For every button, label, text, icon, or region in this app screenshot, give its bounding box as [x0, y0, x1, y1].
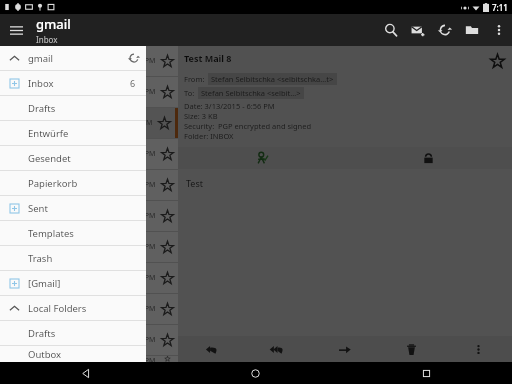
staticText: Inbox [28, 77, 130, 90]
staticText: Stefan Selbitschka <selbit…> [201, 88, 301, 98]
button[interactable]: Compose [404, 14, 431, 46]
button[interactable]: [Gmail] [0, 271, 146, 295]
button[interactable]: Stefan Selbitschka [0, 108, 178, 138]
button[interactable]: Back [0, 362, 170, 384]
staticText: Papierkorb [28, 177, 138, 190]
button[interactable]: Gesendet [0, 146, 146, 170]
staticText: Test Mail 4 [5, 279, 40, 289]
staticText: Stefan Selbitschka [5, 206, 75, 217]
button[interactable]: Outbox [0, 346, 146, 362]
button[interactable]: Stefan Selbitschka [0, 170, 178, 200]
staticText: Stefan Selbitschka [5, 82, 75, 93]
button[interactable]: Drafts [0, 321, 146, 345]
button[interactable]: Home [170, 362, 341, 384]
staticText: Gesendet [28, 152, 138, 165]
button[interactable]: Stefan Selbitschka [0, 46, 178, 76]
button[interactable]: Close navigation drawer [0, 46, 512, 362]
button[interactable]: Sent [0, 196, 146, 220]
staticText: Stefan Selbitschka [5, 268, 75, 279]
button[interactable]: gmail [0, 46, 146, 70]
button[interactable]: Stefan Selbitschka [0, 325, 178, 355]
staticText: Test [186, 177, 204, 189]
button[interactable]: Star message [488, 52, 506, 70]
button[interactable]: More options [445, 336, 512, 362]
staticText: Test Mail 10 [5, 93, 44, 103]
button[interactable]: Open navigation drawer [0, 14, 32, 46]
staticText: Sent [28, 202, 138, 215]
staticText: Test Mail 5 [5, 248, 40, 258]
button[interactable]: Reply all [244, 336, 311, 362]
staticText: 6 [130, 77, 136, 89]
button[interactable]: Stefan Selbitschka <selbitschka…t> [211, 74, 334, 84]
staticText: Date: 3/13/2015 - 6:56 PM [184, 101, 275, 111]
staticText: Inbox [36, 34, 58, 45]
staticText: Test Mail 7 [5, 186, 40, 196]
button[interactable]: Stefan Selbitschka <selbit…> [201, 88, 301, 98]
staticText: Security: PGP encrypted and signed [184, 121, 312, 131]
button[interactable]: Stefan Selbitschka [0, 77, 178, 107]
staticText: 6:53 PM [129, 242, 156, 252]
staticText: Folder: INBOX [184, 131, 234, 141]
button[interactable]: Search [377, 14, 404, 46]
staticText: 6:57 PM [129, 56, 156, 66]
button[interactable]: Entwürfe [0, 121, 146, 145]
button[interactable]: Recents [341, 362, 512, 384]
staticText: Stefan Selbitschka [5, 330, 75, 341]
staticText: Trash [28, 252, 138, 265]
staticText: Stefan Selbitschka <selbitschka…t> [211, 74, 334, 84]
staticText: Local Folders [28, 302, 138, 315]
staticText: Stefan Selbitschka [5, 237, 75, 248]
button[interactable]: Folders [458, 14, 485, 46]
button[interactable]: Refresh account [122, 46, 146, 70]
staticText: [Gmail] [28, 277, 138, 290]
staticText: Stefan Selbitschka [5, 144, 75, 155]
button[interactable]: Inbox [0, 71, 146, 95]
staticText: Templates [28, 227, 138, 240]
staticText: Entwürfe [28, 127, 138, 140]
button[interactable]: Local Folders [0, 296, 146, 320]
staticText: Size: 3 KB [184, 111, 218, 121]
staticText: Test Mail 11 [5, 62, 44, 72]
button[interactable]: More options [485, 14, 512, 46]
button[interactable]: Papierkorb [0, 171, 146, 195]
staticText: 6:55 PM [129, 149, 156, 159]
button[interactable]: Trash [0, 246, 146, 270]
button[interactable]: Stefan Selbitschka [0, 139, 178, 169]
staticText: Test Mail 9 [5, 124, 40, 134]
button[interactable]: Templates [0, 221, 146, 245]
staticText: 6:54 PM [129, 211, 156, 221]
staticText: From: [184, 74, 205, 84]
staticText: 6:56 PM [126, 118, 153, 128]
staticText: Test Mail 2 [5, 341, 40, 351]
button[interactable]: Drafts [0, 96, 146, 120]
button[interactable]: Reply [178, 336, 244, 362]
staticText: 6:51 PM [129, 335, 156, 345]
button[interactable]: Forward [311, 336, 378, 362]
button[interactable]: Stefan Selbitschka [0, 263, 178, 293]
staticText: Test Mail 8 [5, 155, 40, 165]
staticText: 7:11 [492, 2, 508, 13]
button[interactable]: Stefan Selbitschka [0, 294, 178, 324]
staticText: gmail [36, 15, 71, 33]
staticText: gmail [28, 52, 122, 65]
staticText: 6:56 PM [129, 87, 156, 97]
staticText: 6:50 PM [129, 356, 156, 362]
staticText: 6:53 PM [129, 273, 156, 283]
button[interactable]: Stefan Selbitschka [0, 201, 178, 231]
staticText: Stefan Selbitschka [5, 299, 75, 310]
button[interactable]: Stefan Selbitschka [0, 232, 178, 262]
staticText: Drafts [28, 327, 138, 340]
staticText: 6:52 PM [129, 304, 156, 314]
button[interactable]: Delete [378, 336, 445, 362]
staticText: Drafts [28, 102, 138, 115]
staticText: 6:54 PM [129, 180, 156, 190]
staticText: Stefan Selbitschka [5, 175, 75, 186]
staticText: Stefan Selbitschka [5, 113, 75, 124]
staticText: Test Mail 6 [5, 217, 40, 227]
staticText: Stefan Selbitschka [5, 356, 75, 362]
staticText: To: [184, 88, 195, 98]
button[interactable]: Refresh [431, 14, 458, 46]
button[interactable]: Stefan Selbitschka [0, 356, 178, 362]
staticText: Outbox [28, 348, 138, 361]
staticText: Test Mail 8 [184, 52, 488, 64]
